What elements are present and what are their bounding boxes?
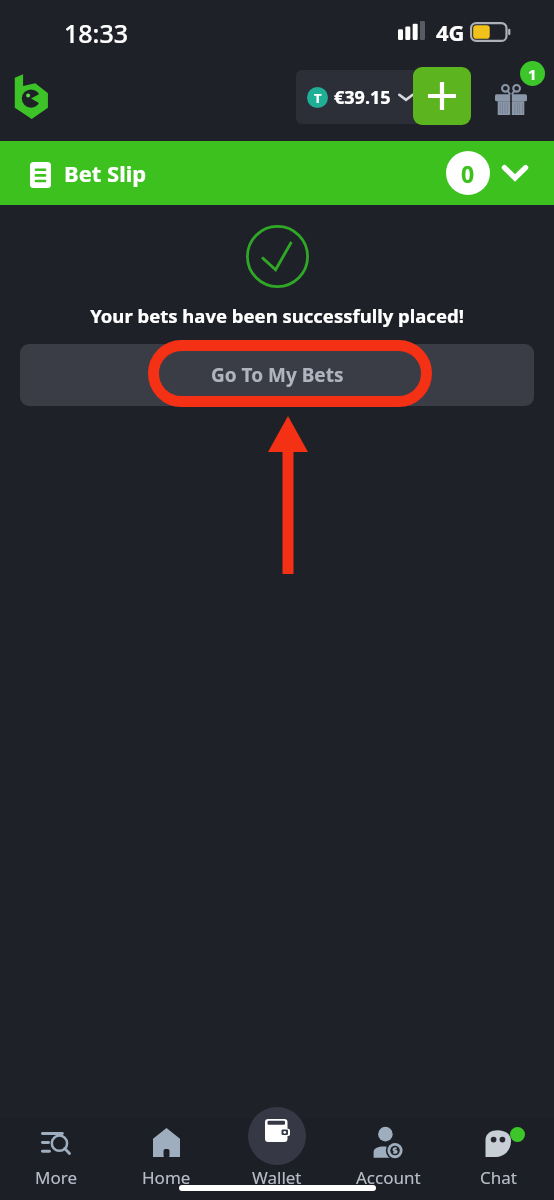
staticText: More (35, 1166, 77, 1189)
staticText: Go To My Bets (211, 362, 344, 388)
staticText: 18:33 (64, 16, 129, 50)
staticText: Bet Slip (64, 158, 147, 188)
button[interactable]: Promotions (486, 66, 544, 124)
button[interactable]: Home (111, 1118, 221, 1200)
button[interactable]: Home logo (6, 66, 56, 124)
staticText: 0 (461, 158, 475, 189)
staticText: Home (142, 1166, 191, 1189)
staticText: €39.15 (334, 85, 391, 110)
button[interactable]: More (1, 1118, 111, 1200)
button[interactable]: Account (333, 1118, 443, 1200)
staticText: Chat (480, 1166, 517, 1189)
button[interactable]: Go To My Bets (20, 344, 534, 406)
staticText: 4G (436, 17, 465, 47)
button[interactable]: Bet Slip (0, 141, 554, 205)
staticText: Account (356, 1166, 421, 1189)
button[interactable]: Chat (443, 1118, 553, 1200)
staticText: Wallet (252, 1166, 302, 1189)
staticText: T (314, 89, 322, 107)
staticText: 1 (528, 64, 537, 84)
button[interactable]: Deposit (413, 67, 471, 125)
button[interactable]: T (296, 70, 425, 124)
button[interactable]: Wallet (222, 1118, 332, 1200)
staticText: Your bets have been successfully placed! (90, 303, 464, 328)
